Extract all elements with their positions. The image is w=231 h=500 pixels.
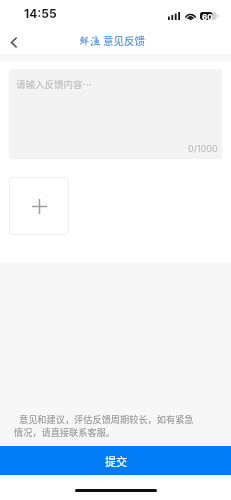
staticText: 鲜渔: [79, 35, 101, 46]
staticText: 意见和建议，评估反馈周期较长，如有紧急: [19, 412, 194, 425]
button[interactable]: 请输入反馈内容…: [9, 69, 222, 159]
staticText: 提交: [105, 453, 127, 469]
button[interactable]: Back: [2, 31, 25, 54]
button[interactable]: Add photo: [9, 177, 69, 235]
staticText: 请输入反馈内容…: [16, 77, 93, 91]
staticText: 14:55: [24, 6, 57, 21]
staticText: 意见反馈: [103, 33, 145, 48]
staticText: 60: [202, 12, 213, 20]
staticText: 情况，请直接联系客服。: [14, 425, 116, 438]
staticText: 0/1000: [188, 143, 218, 154]
button[interactable]: 提交: [0, 446, 231, 475]
